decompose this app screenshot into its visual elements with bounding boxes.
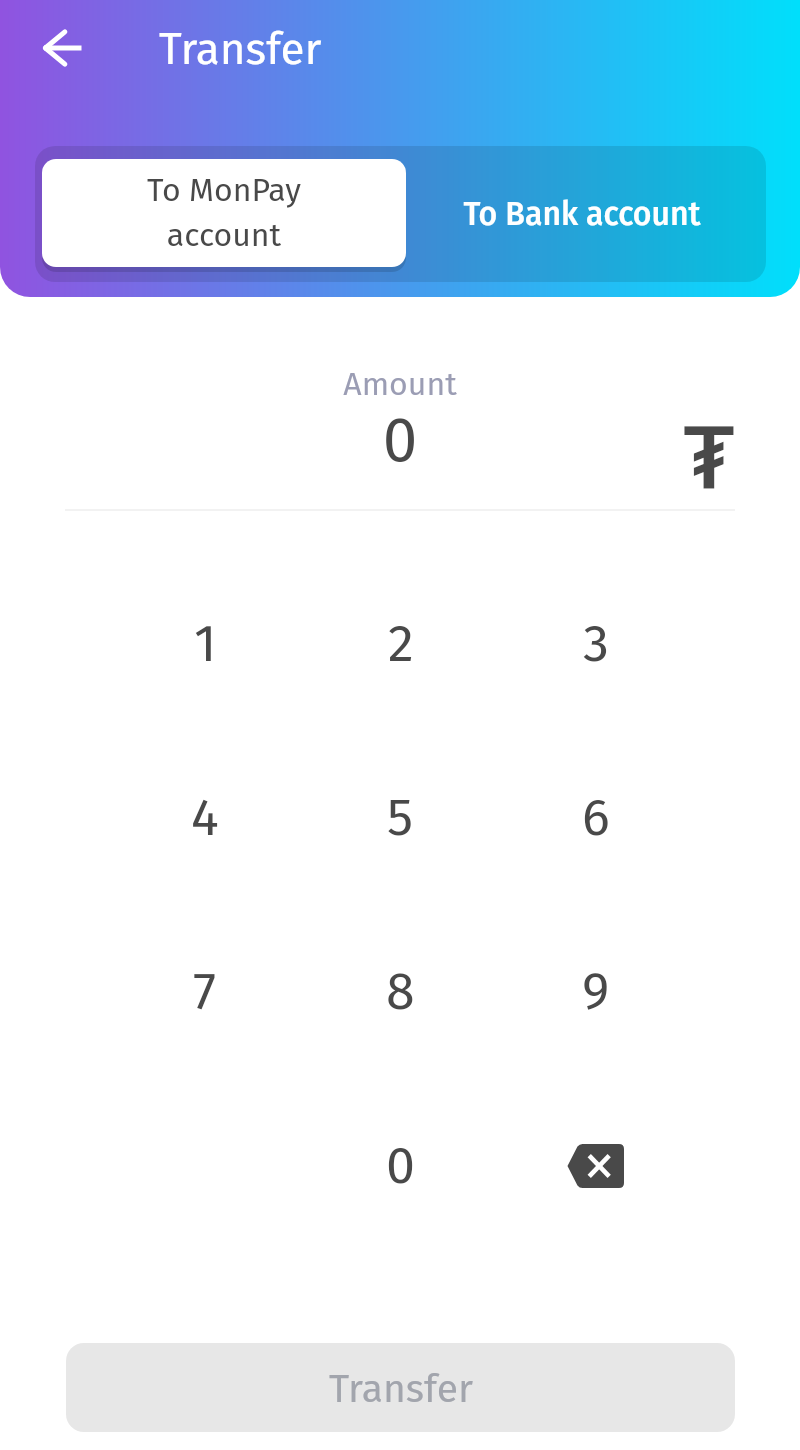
button[interactable]: 7 [107,904,303,1078]
staticText: 6 [582,786,610,848]
button[interactable]: 1 [107,556,303,730]
staticText: 2 [388,612,414,674]
staticText: 7 [193,960,217,1022]
button[interactable]: Transfer [66,1343,735,1432]
staticText: To MonPay account [147,171,301,255]
staticText: To Bank account [463,195,701,233]
button[interactable]: 0 [303,1078,498,1252]
button[interactable]: To Bank account [402,146,762,282]
staticText: Transfer [159,23,322,76]
button[interactable]: 9 [498,904,693,1078]
other: Backspace [567,1144,624,1188]
staticText: 9 [582,960,610,1022]
button[interactable]: 8 [303,904,498,1078]
staticText: 8 [386,960,415,1022]
staticText: 3 [583,612,609,674]
staticText: ₮ [664,407,754,509]
button[interactable]: 2 [303,556,498,730]
button[interactable]: 6 [498,730,693,904]
button[interactable]: 4 [107,730,303,904]
staticText: Transfer [329,1366,473,1413]
staticText: 4 [191,786,219,848]
button[interactable]: To MonPay account [42,159,406,267]
staticText: 0 [0,403,800,477]
staticText: 5 [387,786,414,848]
staticText: 0 [386,1134,416,1196]
button[interactable]: Back [27,13,97,83]
staticText: Amount [0,365,800,403]
button[interactable]: 3 [498,556,693,730]
button[interactable]: Backspace [498,1078,693,1252]
staticText: 1 [194,612,217,674]
button[interactable]: 5 [303,730,498,904]
